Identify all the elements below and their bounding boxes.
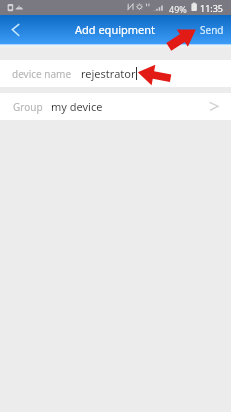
button[interactable]: Group — [0, 93, 231, 120]
staticText: Send — [200, 23, 224, 37]
staticText: my device — [51, 99, 103, 114]
button[interactable]: Back — [0, 15, 31, 44]
staticText: Add equipment — [75, 22, 156, 37]
staticText: Group — [13, 100, 43, 114]
staticText: 11:35 — [200, 2, 224, 14]
button[interactable]: Send — [200, 23, 224, 37]
staticText: rejestrator — [81, 66, 136, 81]
staticText: 49% — [169, 3, 187, 15]
staticText: device name — [12, 67, 72, 81]
